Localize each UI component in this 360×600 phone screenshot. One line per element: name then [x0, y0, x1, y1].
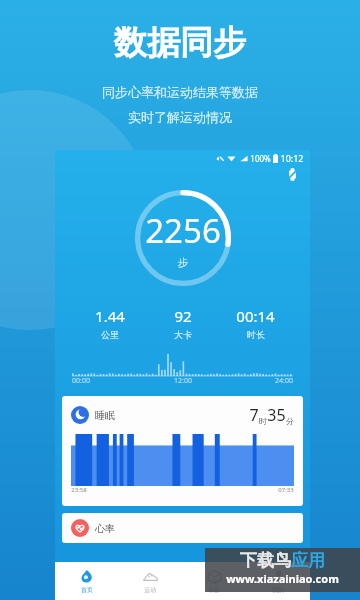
staticText: 10:12 — [280, 152, 304, 164]
staticText: 100% — [250, 153, 271, 164]
button[interactable]: 睡眠 — [62, 396, 303, 506]
button[interactable]: 首页 — [55, 562, 118, 600]
staticText: 应用 — [291, 550, 325, 571]
staticText: 00:14 — [236, 306, 275, 326]
staticText: 12:00 — [174, 376, 192, 386]
staticText: 装备 — [208, 586, 220, 594]
staticText: 运动 — [144, 586, 156, 594]
staticText: 步 — [178, 256, 188, 269]
button[interactable]: 运动 — [118, 562, 182, 600]
staticText: 心率 — [95, 522, 115, 535]
staticText: 分 — [286, 416, 294, 426]
staticText: 23:58 — [71, 486, 87, 494]
button[interactable]: 心率 — [62, 513, 303, 543]
staticText: 24:00 — [275, 376, 293, 386]
staticText: www.xiazainiao.com — [226, 571, 339, 586]
staticText: 睡眠 — [95, 409, 115, 422]
staticText: 35 — [267, 404, 286, 426]
button[interactable]: 装备 — [182, 562, 246, 600]
staticText: 我的 — [272, 586, 284, 594]
staticText: 时长 — [247, 329, 265, 340]
staticText: 1.44 — [95, 306, 125, 326]
staticText: 实时了解运动情况 — [128, 109, 232, 125]
staticText: 大卡 — [174, 329, 192, 340]
button[interactable]: Connected watch — [284, 166, 300, 182]
staticText: 时 — [259, 416, 267, 426]
staticText: 2256 — [145, 208, 221, 253]
staticText: 数据同步 — [114, 22, 246, 64]
staticText: 7 — [249, 404, 259, 426]
staticText: 首页 — [81, 586, 93, 594]
staticText: 92 — [174, 306, 192, 326]
staticText: 同步心率和运动结果等数据 — [102, 84, 258, 100]
button[interactable]: 我的 — [246, 562, 310, 600]
staticText: 下载鸟 — [240, 550, 291, 571]
staticText: 07:33 — [278, 486, 294, 494]
staticText: 00:00 — [72, 376, 90, 386]
staticText: 公里 — [101, 329, 119, 340]
